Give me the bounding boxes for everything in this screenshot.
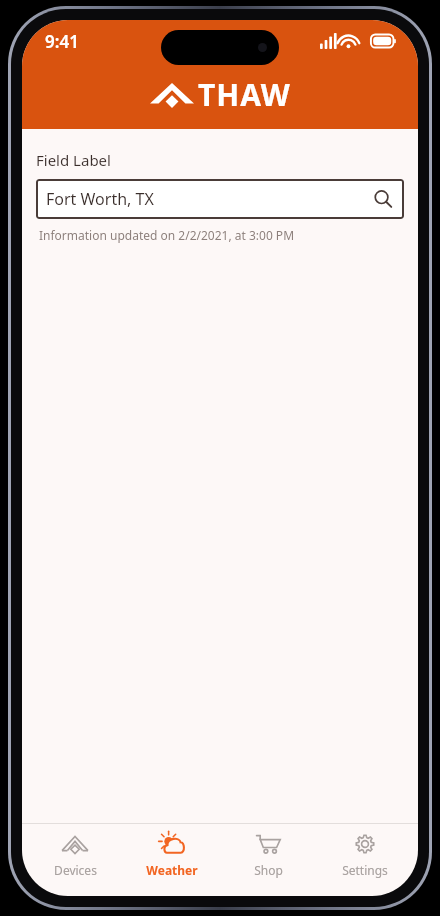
staticText: Settings xyxy=(342,862,388,878)
staticText: Weather xyxy=(146,862,198,878)
button[interactable]: Devices xyxy=(31,824,119,878)
button[interactable]: Shop xyxy=(224,824,312,878)
staticText: Field Label xyxy=(36,150,111,170)
button[interactable]: Weather xyxy=(128,824,216,878)
button[interactable]: Fort Worth, TX xyxy=(36,179,404,219)
button[interactable]: Settings xyxy=(321,824,409,878)
staticText: Information updated on 2/2/2021, at 3:00… xyxy=(39,227,295,243)
other: Search xyxy=(374,190,392,208)
staticText: 9:41 xyxy=(45,30,79,53)
staticText: THAW xyxy=(198,74,291,115)
staticText: Devices xyxy=(54,862,97,878)
staticText: Fort Worth, TX xyxy=(46,188,154,210)
staticText: Shop xyxy=(254,862,283,878)
